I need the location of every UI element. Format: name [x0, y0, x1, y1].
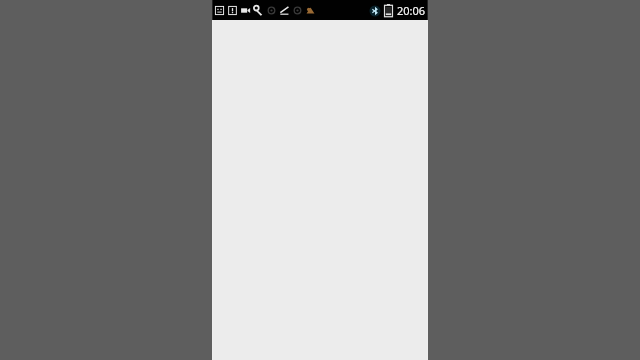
other: Storage notification — [305, 5, 316, 16]
other: Settings notification — [253, 5, 264, 16]
other: Sync notification — [292, 5, 303, 16]
other: Chart notification — [279, 5, 290, 16]
other: Bluetooth — [369, 5, 381, 17]
other: Sync notification — [266, 5, 277, 16]
other: Battery — [384, 4, 393, 17]
other: Video notification — [240, 5, 251, 16]
other: Download notification — [227, 5, 238, 16]
staticText: 20:06 — [396, 3, 425, 18]
other: Message notification — [214, 5, 225, 16]
